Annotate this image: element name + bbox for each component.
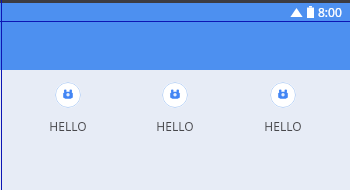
staticText: HELLO [49,118,87,134]
staticText: HELLO [156,118,194,134]
button[interactable]: Hello shortcut [28,80,108,136]
button[interactable]: Hello shortcut [243,80,323,136]
other: Hello shortcut [162,82,188,108]
other: Hello shortcut [55,82,81,108]
staticText: 8:00 [318,4,342,20]
button[interactable]: Hello shortcut [135,80,215,136]
other: Hello shortcut [270,82,296,108]
staticText: HELLO [264,118,302,134]
